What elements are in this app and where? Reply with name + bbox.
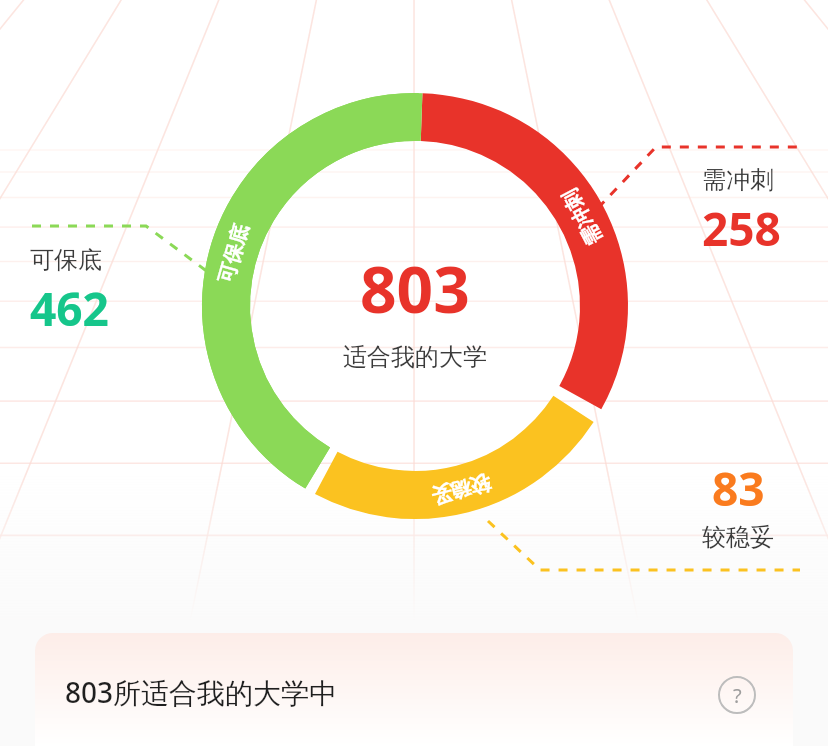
staticText: ?: [733, 682, 742, 709]
button[interactable]: 帮助: [718, 676, 756, 714]
button[interactable]: 803所适合我的大学中: [35, 633, 793, 746]
staticText: 803所适合我的大学中: [65, 673, 338, 711]
staticText: 需冲刺: [702, 165, 774, 195]
staticText: 83: [712, 457, 765, 520]
button[interactable]: 可保底: [28, 243, 111, 340]
staticText: 462: [30, 277, 109, 340]
staticText: 可保底: [30, 245, 102, 275]
button[interactable]: 志愿分布环形图: [0, 0, 828, 746]
button[interactable]: 83: [700, 455, 776, 552]
staticText: 258: [702, 197, 781, 260]
staticText: 较稳妥: [702, 522, 774, 552]
button[interactable]: 需冲刺: [700, 163, 783, 260]
